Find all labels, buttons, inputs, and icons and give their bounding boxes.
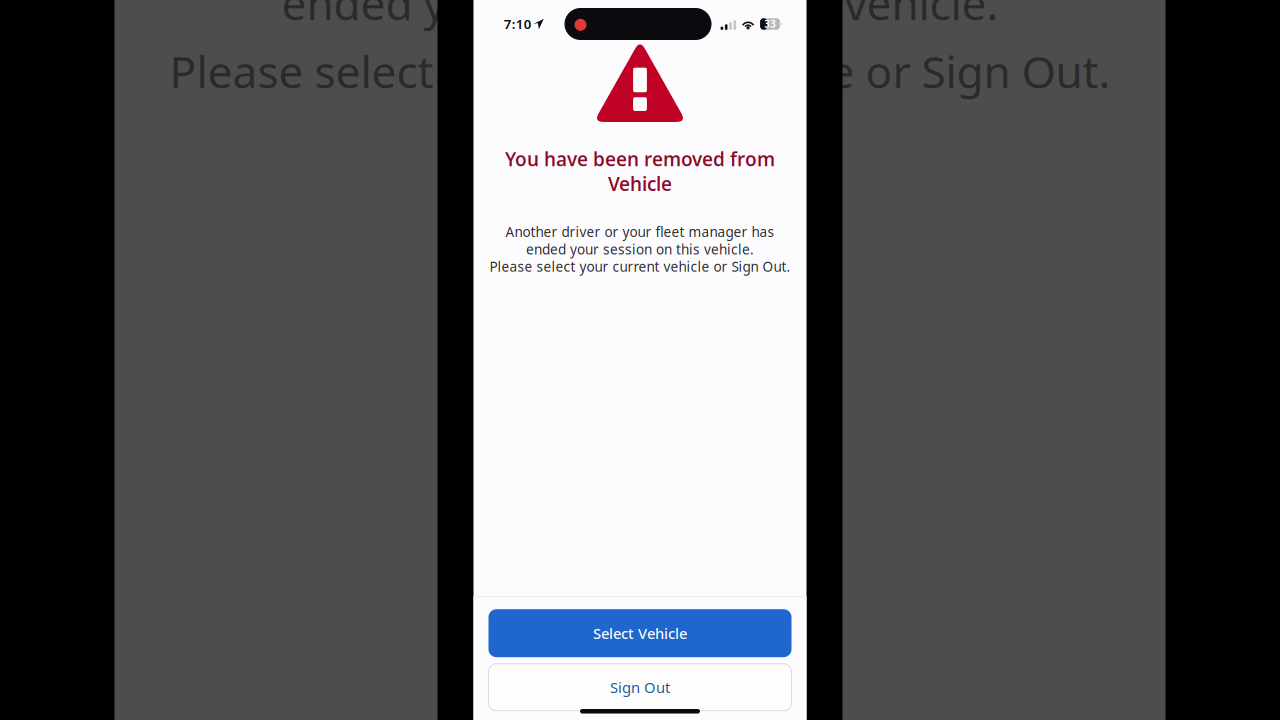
staticText: ended your session on this vehicle. bbox=[281, 0, 998, 33]
staticText: You have been removed from bbox=[505, 146, 775, 172]
staticText: Another driver or your fleet manager has bbox=[505, 223, 774, 241]
staticText: Sign Out bbox=[610, 677, 670, 697]
staticText: Select Vehicle bbox=[593, 623, 687, 643]
staticText: Please select your current vehicle or Si… bbox=[169, 41, 1110, 101]
staticText: 33 bbox=[764, 17, 776, 31]
staticText: 7:10 bbox=[504, 15, 532, 33]
staticText: ended your session on this vehicle. bbox=[526, 240, 754, 258]
staticText: Vehicle bbox=[608, 171, 672, 197]
button[interactable]: Sign Out bbox=[488, 664, 791, 711]
staticText: Please select your current vehicle or Si… bbox=[489, 257, 790, 276]
button[interactable]: Select Vehicle bbox=[488, 609, 791, 657]
